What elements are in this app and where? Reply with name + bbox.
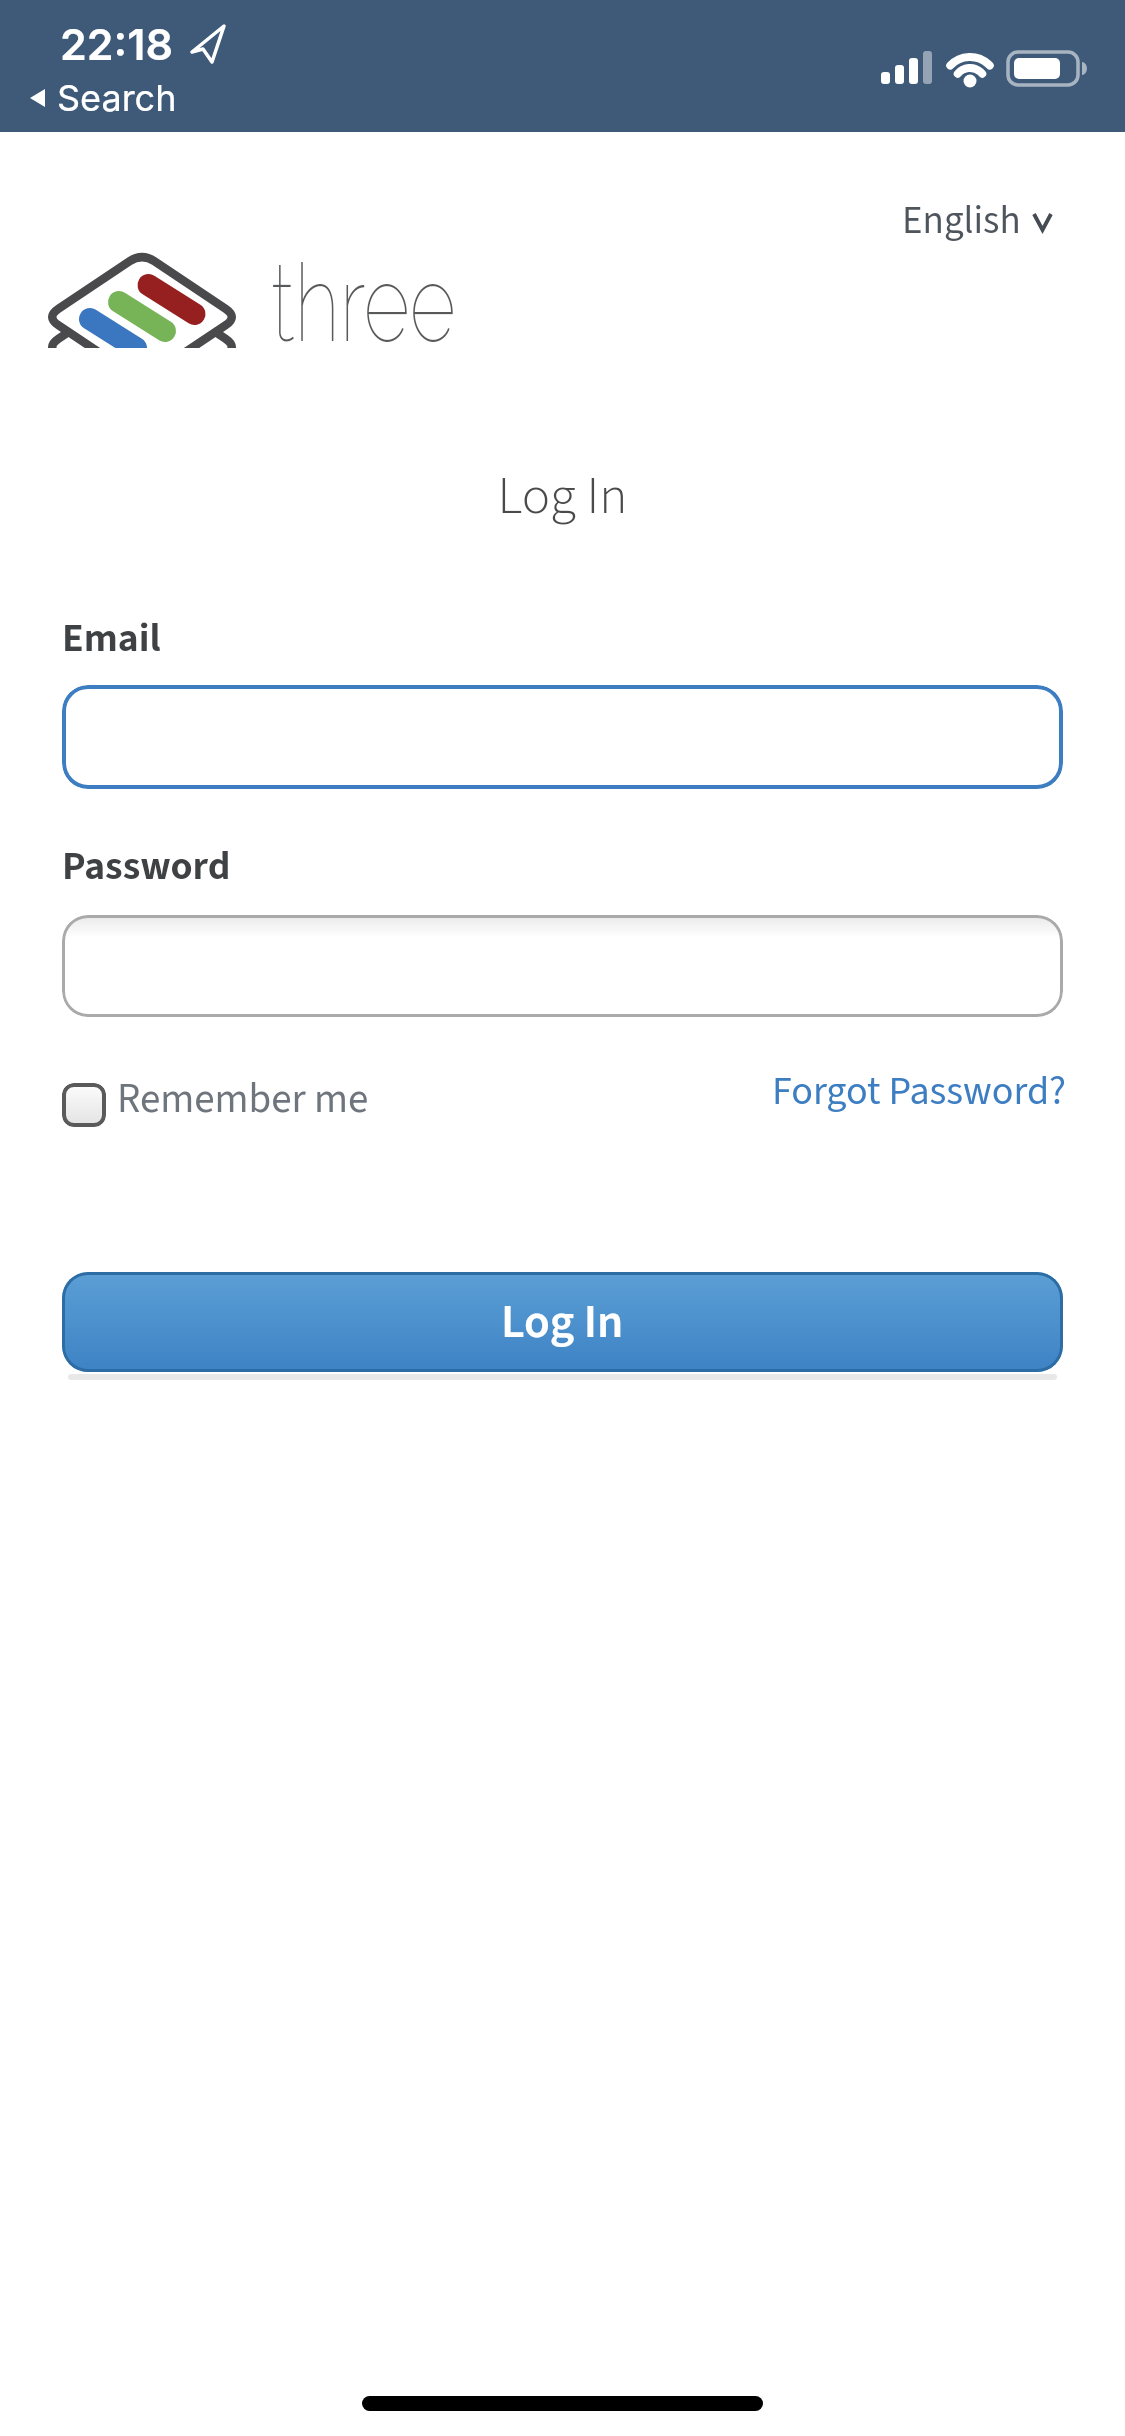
staticText: English xyxy=(902,193,1021,249)
staticText: 22:18 xyxy=(60,18,174,70)
button[interactable]: Log In xyxy=(62,1272,1063,1372)
button[interactable]: Forgot Password? xyxy=(772,1063,1067,1120)
staticText: three xyxy=(271,239,456,366)
staticText: Log In xyxy=(501,1289,624,1356)
staticText: Email xyxy=(62,610,161,667)
staticText: Search xyxy=(57,76,177,120)
button[interactable]: English xyxy=(902,193,1051,249)
button[interactable] xyxy=(62,685,1063,789)
staticText: Password xyxy=(62,838,231,895)
button[interactable]: Remember me xyxy=(62,1070,369,1128)
staticText: Log In xyxy=(0,459,1125,534)
staticText: Remember me xyxy=(117,1070,369,1128)
button[interactable] xyxy=(62,915,1063,1017)
